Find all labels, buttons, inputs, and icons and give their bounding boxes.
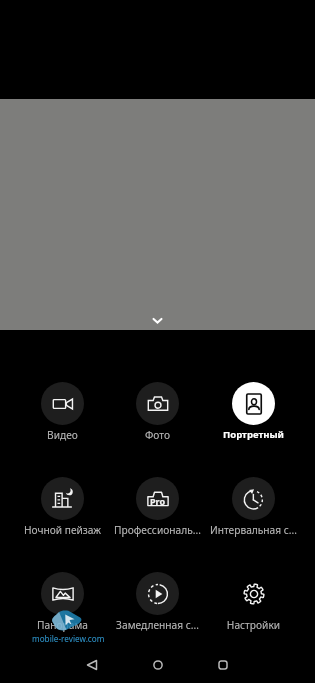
staticText: Настройки	[202, 618, 305, 632]
button[interactable]: Портретный	[202, 382, 305, 441]
staticText: Pro	[150, 495, 166, 507]
staticText: mobile-review.com	[32, 633, 105, 644]
button[interactable]: Замедленная с...	[106, 572, 209, 632]
staticText: Видео	[11, 428, 114, 442]
staticText: Фото	[106, 428, 209, 442]
button[interactable]: Фото	[106, 382, 209, 442]
button[interactable]: Видео	[11, 382, 114, 442]
staticText: Профессиональ...	[106, 523, 209, 537]
button[interactable]: Настройки	[202, 572, 305, 632]
staticText: Интервальная с...	[202, 523, 305, 537]
staticText: Ночной пейзаж	[11, 523, 114, 537]
button[interactable]: Collapse modes	[150, 312, 165, 328]
staticText: Замедленная с...	[106, 618, 209, 632]
staticText: Портретный	[202, 428, 305, 441]
button[interactable]: Pro	[106, 477, 209, 537]
button[interactable]: Панорама	[11, 572, 114, 632]
staticText: Панорама	[11, 618, 114, 632]
button[interactable]: Back	[72, 647, 112, 683]
button[interactable]: Home	[138, 647, 178, 683]
button[interactable]: Recents	[203, 647, 243, 683]
button[interactable]: Интервальная с...	[202, 477, 305, 537]
button[interactable]: Ночной пейзаж	[11, 477, 114, 537]
